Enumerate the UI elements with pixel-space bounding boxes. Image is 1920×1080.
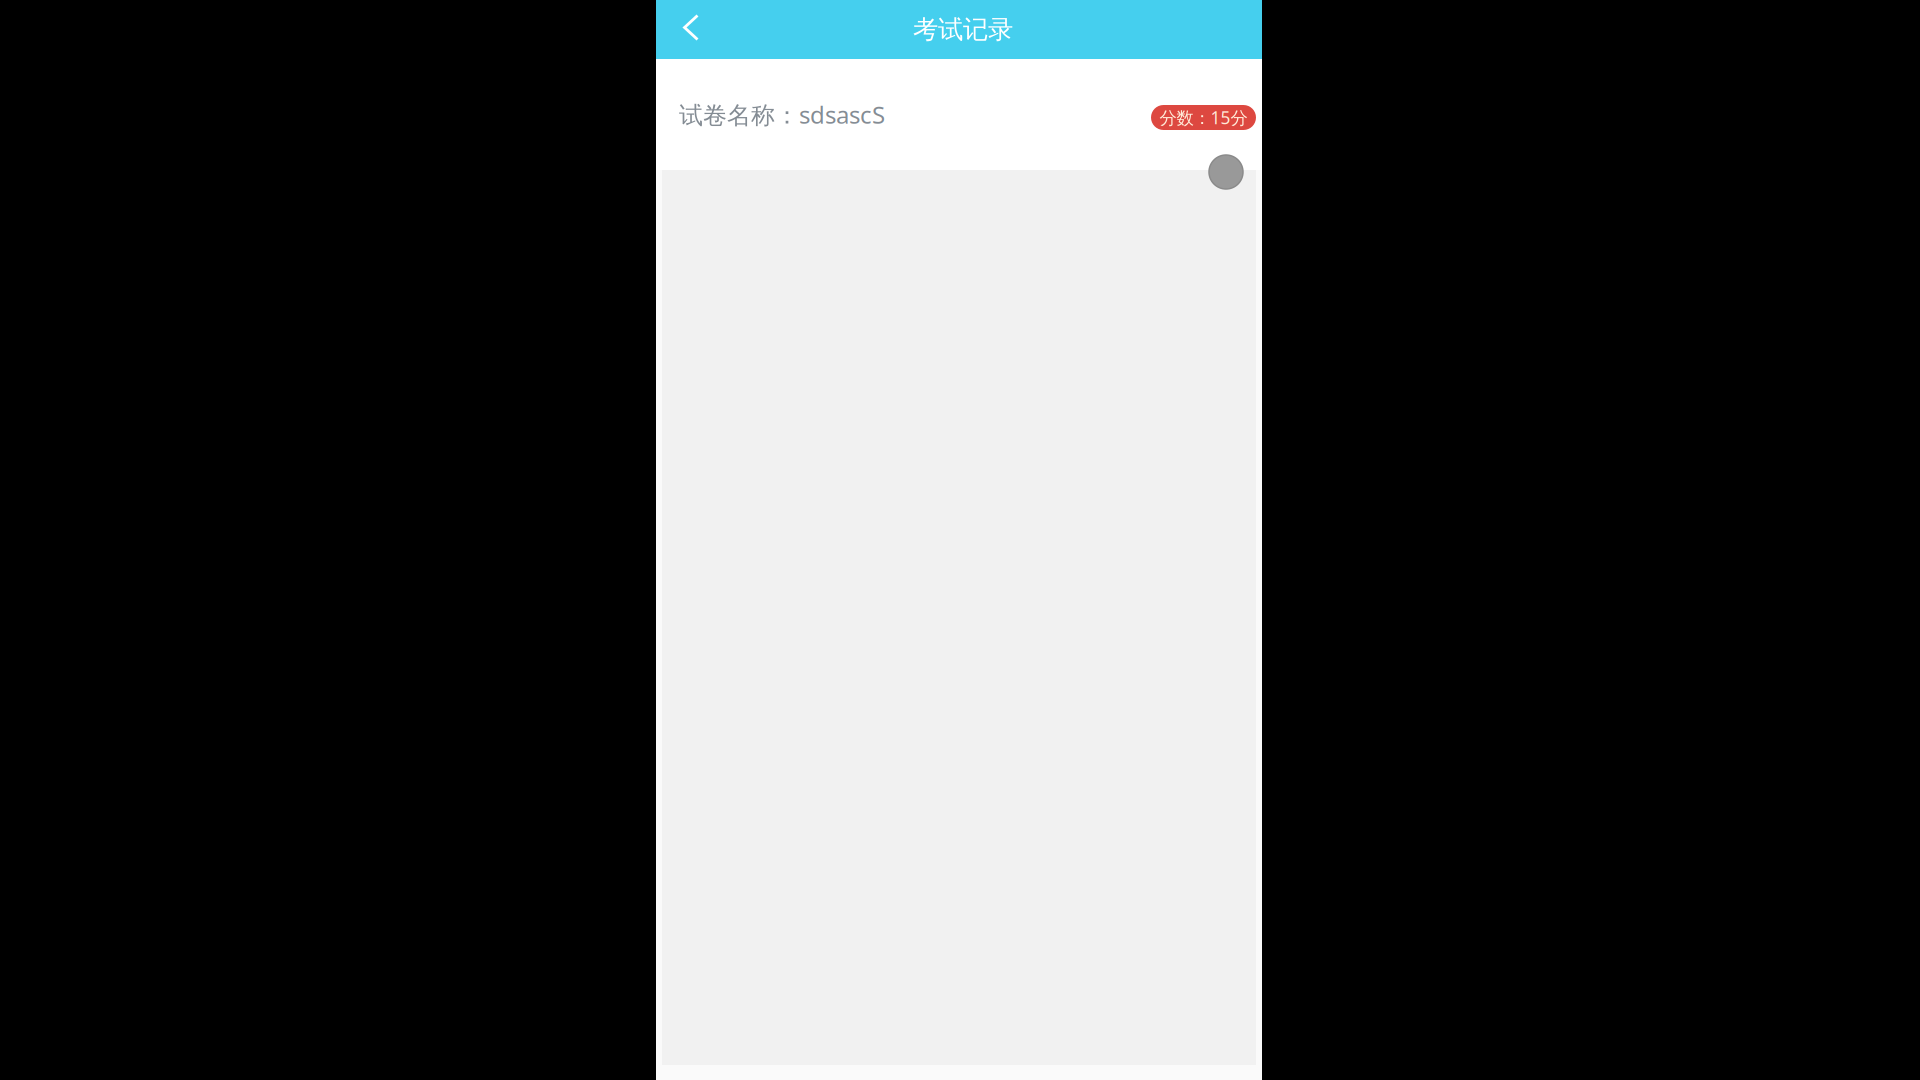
button[interactable]: 试卷名称：sdsascS <box>656 59 1262 170</box>
staticText: 分数：15分 <box>1159 106 1247 129</box>
staticText: 考试记录 <box>913 14 1013 45</box>
button[interactable]: Back <box>656 0 726 59</box>
staticText: 试卷名称：sdsascS <box>679 99 885 130</box>
